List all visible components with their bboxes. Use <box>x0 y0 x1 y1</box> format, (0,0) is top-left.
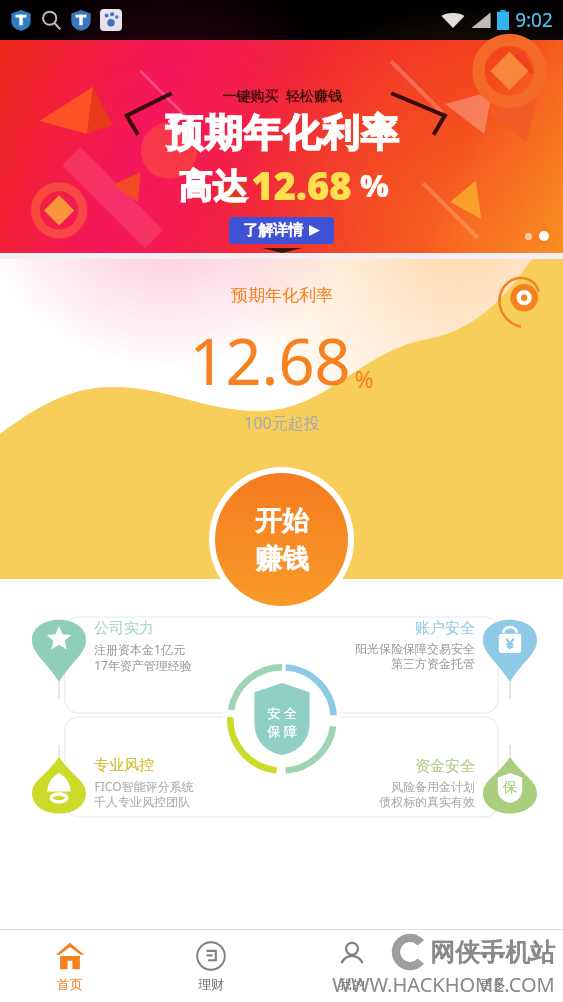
staticText: 资金安全 <box>415 757 475 776</box>
staticText: 更多 <box>480 976 506 992</box>
staticText: 开始 <box>255 504 309 538</box>
button[interactable]: 首页 <box>0 930 140 1002</box>
staticText: 专业风控 <box>94 756 154 775</box>
staticText: 赚钱 <box>255 542 309 576</box>
staticText: WWW.HACKHOME.COM <box>332 971 555 998</box>
staticText: 网侠手机站 <box>430 937 555 968</box>
staticText: % <box>354 363 374 394</box>
staticText: 阳光保险保障交易安全 <box>355 641 475 656</box>
staticText: FICO智能评分系统 <box>94 778 194 794</box>
button[interactable]: 专业风控 <box>32 745 194 823</box>
staticText: 一键购买 轻松赚钱 <box>222 86 342 105</box>
staticText: 理财 <box>198 976 224 992</box>
button[interactable]: 更多 <box>422 930 563 1002</box>
staticText: 保 <box>503 779 517 797</box>
staticText: 了解详情 <box>243 221 303 240</box>
staticText: 注册资本金1亿元 <box>94 641 185 657</box>
staticText: 保 障 <box>267 722 297 740</box>
staticText: 12.68 <box>189 318 351 404</box>
button[interactable]: 开始 <box>215 473 348 606</box>
staticText: 预期年化利率 <box>231 285 333 306</box>
button[interactable]: 了解详情 <box>229 217 334 244</box>
staticText: 100元起投 <box>244 412 320 434</box>
button[interactable]: 理财 <box>140 930 281 1002</box>
button[interactable]: 资金安全 <box>379 745 537 823</box>
staticText: 高达 <box>174 162 251 208</box>
staticText: 千人专业风控团队 <box>94 794 190 809</box>
staticText: 我的 <box>339 976 365 992</box>
staticText: 首页 <box>57 976 83 992</box>
staticText: 账户安全 <box>415 619 475 638</box>
staticText: 风险备用金计划 <box>391 779 475 794</box>
staticText: 12.68 <box>251 159 352 211</box>
button[interactable]: 我的 <box>281 930 422 1002</box>
staticText: 预期年化利率 <box>165 109 399 157</box>
button[interactable]: 账户安全 <box>355 613 537 699</box>
staticText: 债权标的真实有效 <box>379 794 475 809</box>
staticText: 17年资产管理经验 <box>94 657 192 673</box>
staticText: 第三方资金托管 <box>391 656 475 671</box>
button[interactable]: 公司实力 <box>32 613 192 699</box>
staticText: 9:02 <box>515 7 553 33</box>
staticText: % <box>352 165 389 206</box>
staticText: 公司实力 <box>94 619 154 638</box>
staticText: 安 全 <box>267 704 297 722</box>
